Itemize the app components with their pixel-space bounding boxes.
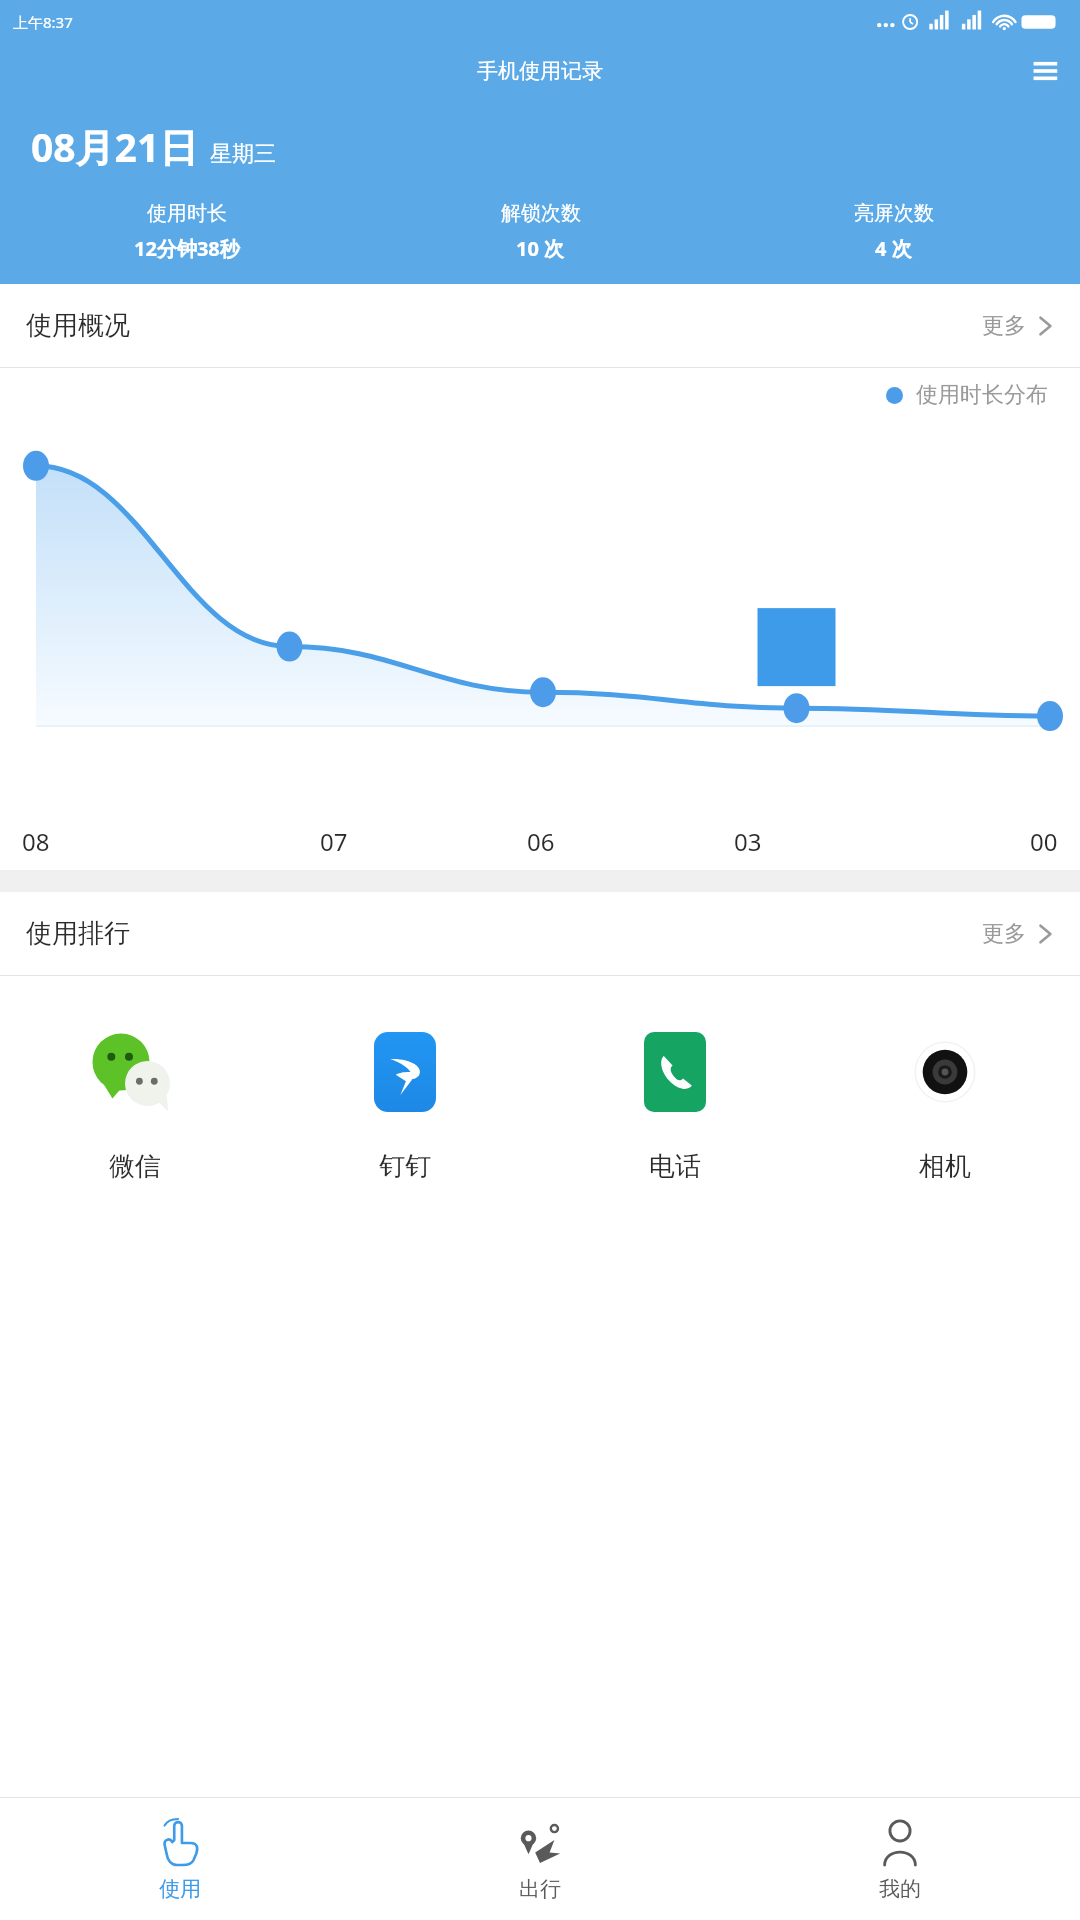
staticText: 4 次: [875, 235, 912, 262]
staticText: 06: [527, 825, 555, 858]
staticText: 08: [22, 825, 50, 858]
button[interactable]: 电话: [540, 1018, 810, 1183]
button[interactable]: 使用: [0, 1798, 360, 1920]
staticText: 更多: [982, 920, 1026, 948]
staticText: 手机使用记录: [477, 58, 603, 84]
staticText: 我的: [879, 1876, 921, 1902]
staticText: 出行: [519, 1876, 561, 1902]
staticText: 上午8:37: [13, 12, 73, 32]
staticText: 钉钉: [379, 1150, 431, 1183]
staticText: 星期三: [210, 140, 276, 168]
staticText: 使用时长: [147, 201, 227, 226]
staticText: 00: [1030, 825, 1058, 858]
button[interactable]: Menu: [1028, 54, 1062, 88]
button[interactable]: 使用概况: [0, 284, 1080, 367]
staticText: 微信: [109, 1150, 161, 1183]
button[interactable]: 使用排行: [0, 892, 1080, 975]
staticText: 电话: [649, 1150, 701, 1183]
staticText: 07: [320, 825, 348, 858]
button[interactable]: 我的: [720, 1798, 1080, 1920]
staticText: 更多: [982, 312, 1026, 340]
staticText: 使用概况: [26, 309, 130, 342]
staticText: 03: [734, 825, 762, 858]
button[interactable]: 钉钉: [270, 1018, 540, 1183]
staticText: 相机: [919, 1150, 971, 1183]
staticText: 使用时长分布: [916, 381, 1048, 409]
button[interactable]: 出行: [360, 1798, 720, 1920]
staticText: 10 次: [516, 235, 565, 262]
staticText: 使用: [159, 1876, 201, 1902]
staticText: 解锁次数: [501, 201, 581, 226]
staticText: 使用排行: [26, 917, 130, 950]
staticText: 亮屏次数: [854, 201, 934, 226]
button[interactable]: 相机: [810, 1018, 1080, 1183]
staticText: 08月21日: [31, 120, 199, 173]
button[interactable]: 微信: [0, 1018, 270, 1183]
staticText: 12分钟38秒: [134, 235, 240, 262]
